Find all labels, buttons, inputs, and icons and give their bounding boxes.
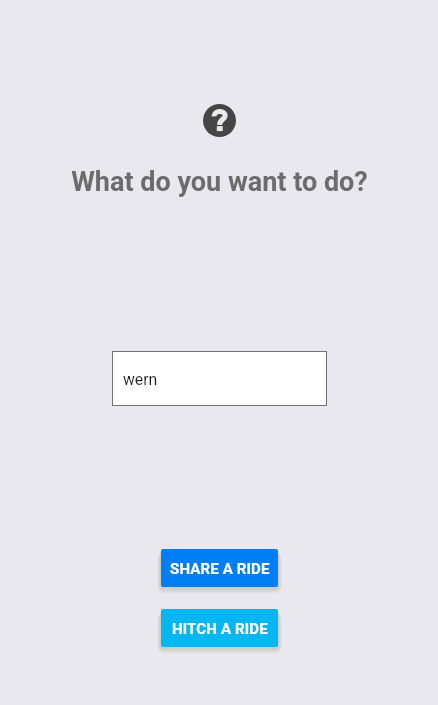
button[interactable]: wern bbox=[112, 351, 327, 406]
staticText: wern bbox=[123, 370, 158, 389]
button[interactable]: Help bbox=[203, 104, 236, 137]
staticText: What do you want to do? bbox=[71, 166, 368, 198]
button[interactable]: HITCH A RIDE bbox=[161, 609, 278, 647]
staticText: HITCH A RIDE bbox=[172, 620, 268, 638]
staticText: SHARE A RIDE bbox=[170, 560, 270, 578]
button[interactable]: SHARE A RIDE bbox=[161, 549, 278, 587]
